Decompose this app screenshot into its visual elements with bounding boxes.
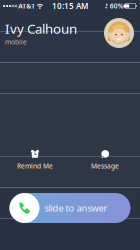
- staticText: mobile: [5, 37, 27, 46]
- staticText: Message: [91, 162, 119, 170]
- staticText: 10:15 AM: [52, 1, 88, 11]
- staticText: Remind Me: [17, 162, 53, 170]
- button[interactable]: Remind Me: [0, 149, 70, 171]
- staticText: AT&T: [18, 2, 35, 10]
- button[interactable]: Message: [70, 149, 140, 171]
- staticText: 60%: [110, 2, 124, 10]
- staticText: slide to answer: [44, 202, 107, 214]
- staticText: Ivy Calhoun: [5, 20, 77, 37]
- button[interactable]: slide to answer: [9, 193, 130, 223]
